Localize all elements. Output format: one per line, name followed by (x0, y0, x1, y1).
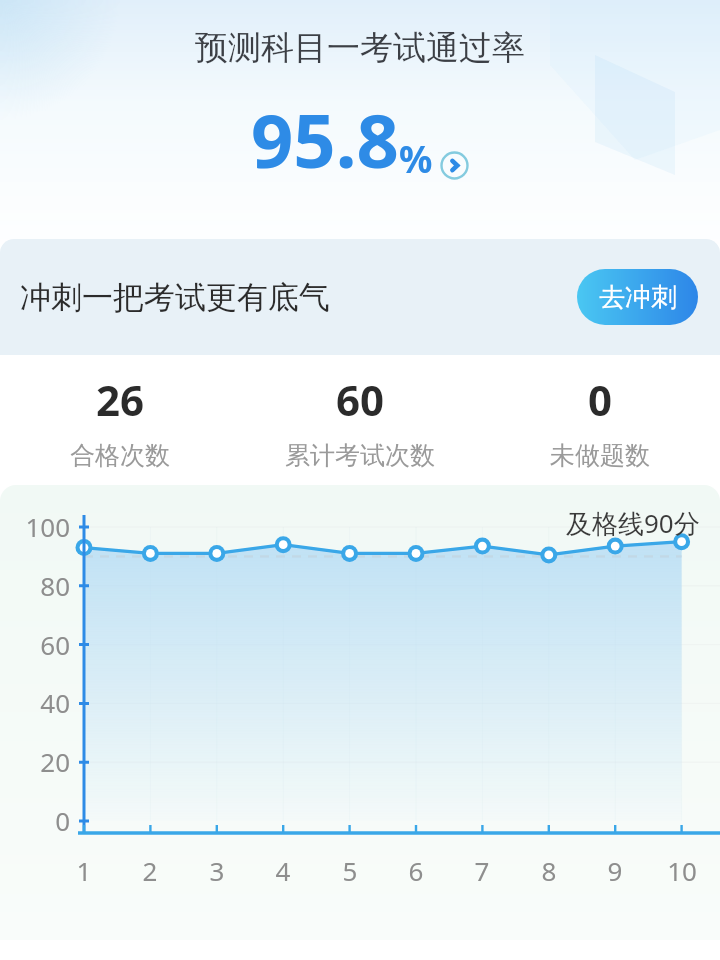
staticText: 20 (0, 744, 70, 779)
button[interactable]: 60 (240, 371, 480, 471)
staticText: 0 (0, 803, 70, 838)
staticText: 8 (524, 853, 574, 888)
staticText: 及格线90分 (566, 505, 700, 541)
staticText: 去冲刺 (599, 281, 677, 314)
staticText: 95.8 (251, 89, 399, 190)
staticText: 5 (325, 853, 375, 888)
staticText: 0 (588, 371, 613, 428)
staticText: 6 (391, 853, 441, 888)
staticText: 未做题数 (550, 440, 650, 471)
staticText: 40 (0, 685, 70, 720)
staticText: 累计考试次数 (285, 440, 435, 471)
staticText: 100 (0, 509, 70, 544)
other: 查看详情 (440, 151, 469, 180)
staticText: 预测科目一考试通过率 (0, 27, 720, 69)
staticText: % (399, 133, 433, 183)
button[interactable]: 95.8 (0, 89, 720, 190)
button[interactable]: 0 (480, 371, 720, 471)
staticText: 冲刺一把考试更有底气 (20, 278, 330, 317)
staticText: 1 (59, 853, 109, 888)
staticText: 合格次数 (70, 440, 170, 471)
staticText: 7 (457, 853, 507, 888)
staticText: 4 (258, 853, 308, 888)
button[interactable]: 26 (0, 371, 240, 471)
staticText: 3 (192, 853, 242, 888)
staticText: 2 (125, 853, 175, 888)
button[interactable]: 去冲刺 (577, 269, 698, 325)
staticText: 10 (657, 853, 707, 888)
staticText: 80 (0, 568, 70, 603)
staticText: 60 (0, 627, 70, 662)
staticText: 26 (96, 371, 145, 428)
staticText: 60 (336, 371, 385, 428)
staticText: 9 (590, 853, 640, 888)
